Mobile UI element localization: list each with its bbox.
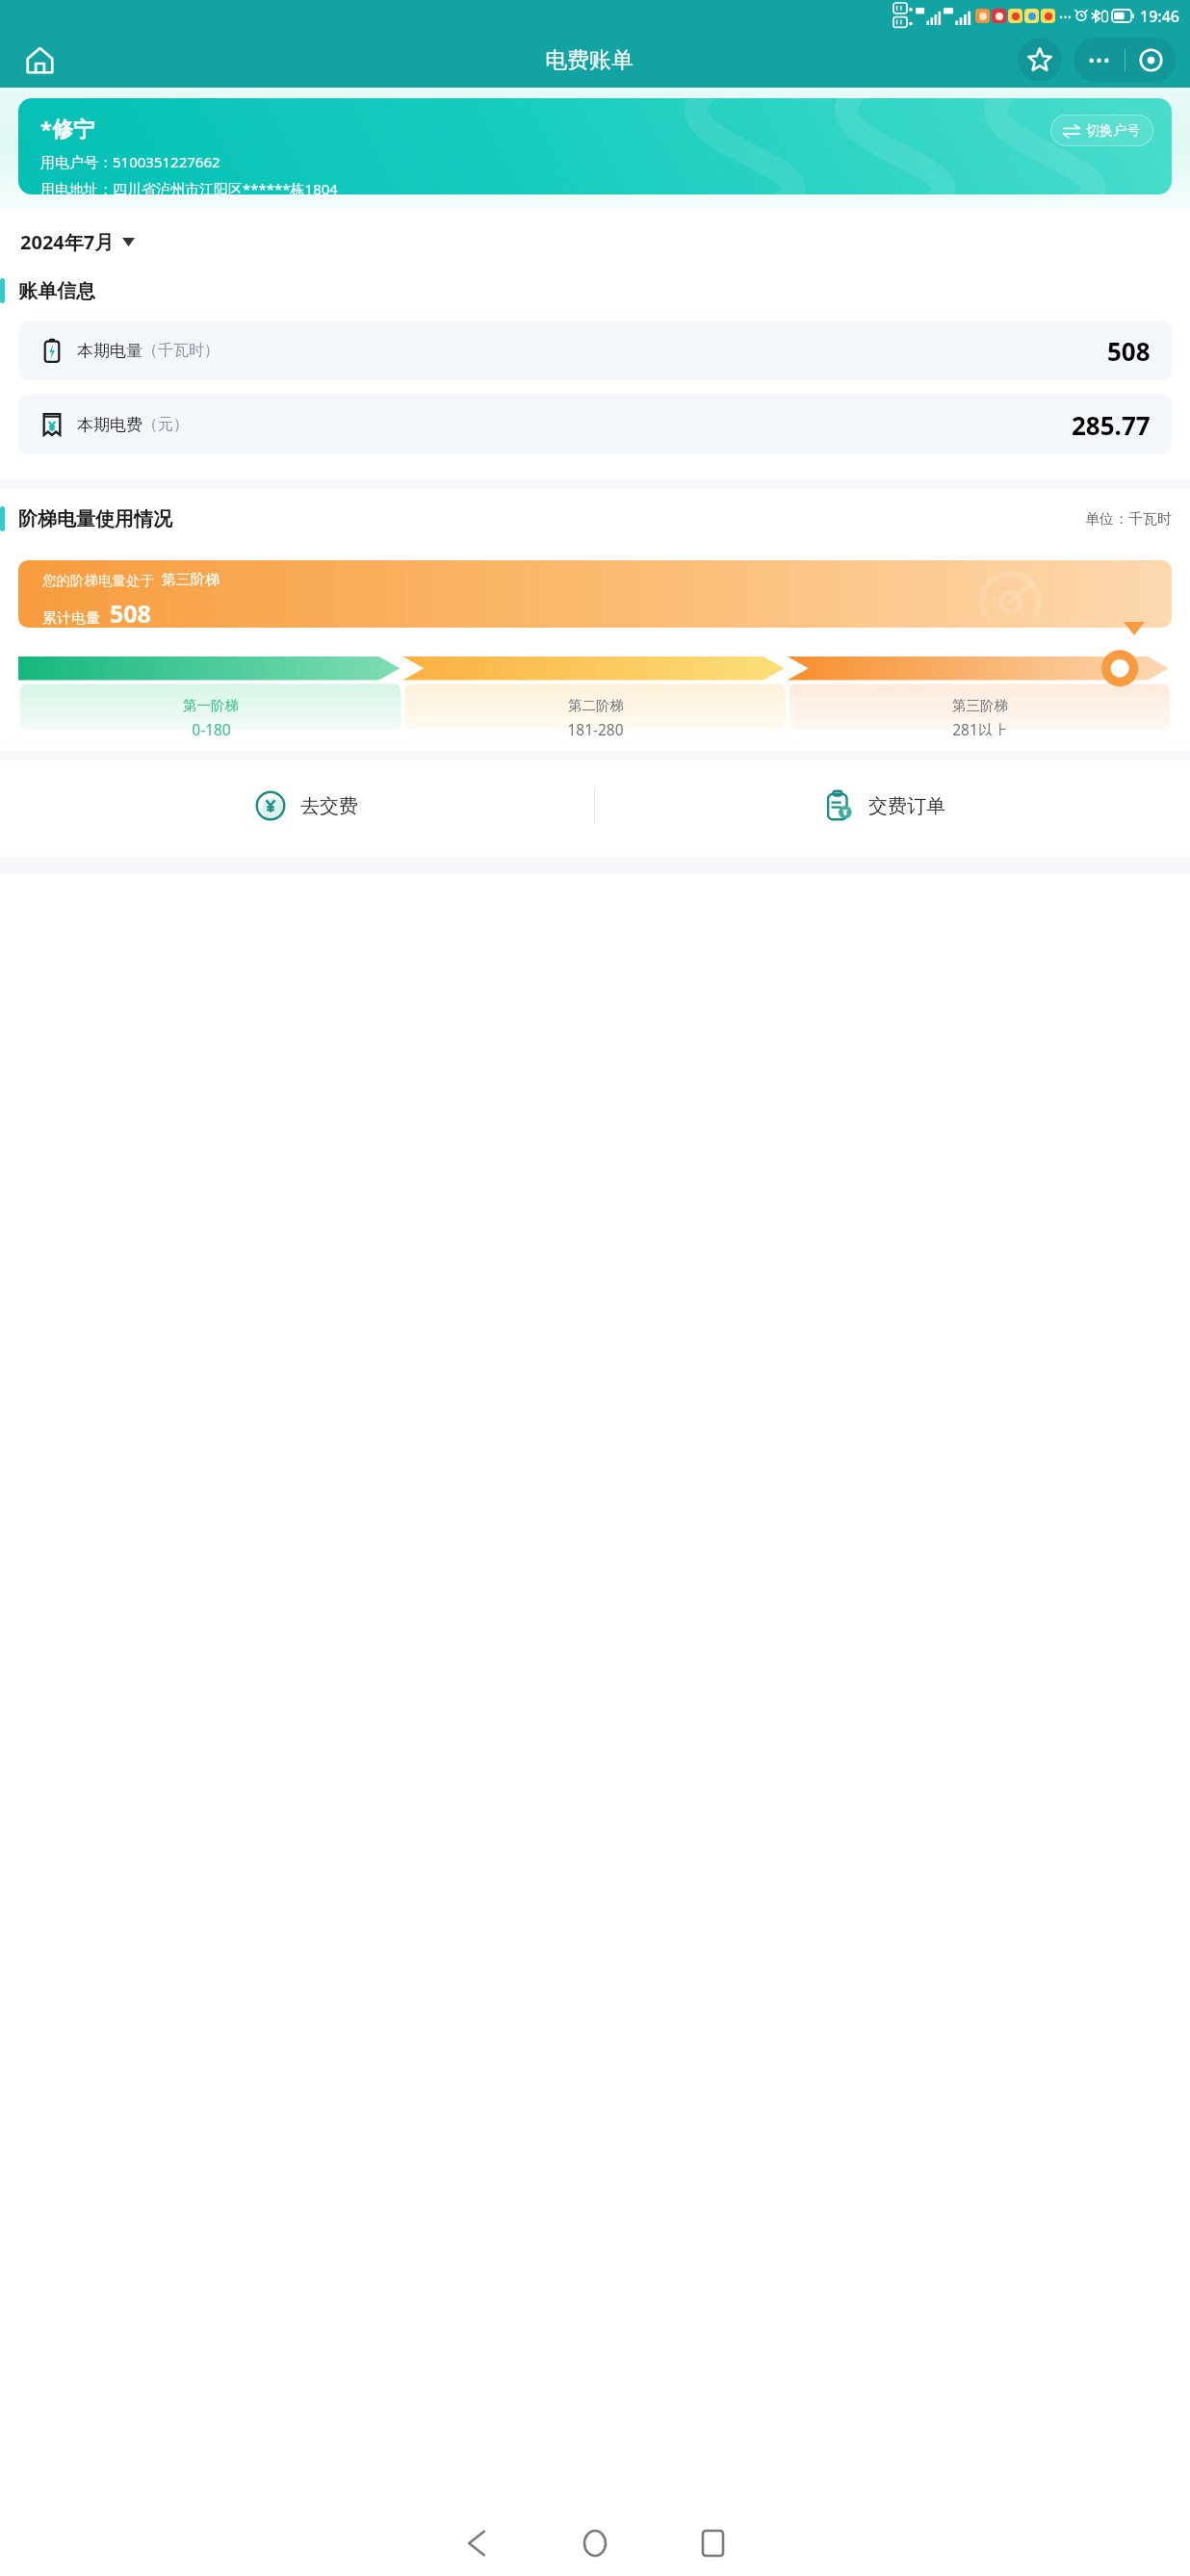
button[interactable]: 第一阶梯 [18, 689, 403, 735]
button[interactable]: Close [1125, 38, 1177, 82]
button[interactable]: 第三阶梯 [788, 689, 1172, 735]
staticText: 508 [1107, 334, 1151, 368]
button[interactable]: 您的阶梯电量处于 [18, 560, 1172, 628]
staticText: 281以上 [952, 719, 1008, 735]
button[interactable]: 交费订单 [595, 768, 1172, 843]
button[interactable]: 去交费 [18, 768, 594, 843]
button[interactable]: Recent apps [677, 2511, 748, 2576]
staticText: 用电户号：5100351227662 [40, 152, 220, 171]
staticText: 您的阶梯电量处于 [42, 572, 154, 589]
button[interactable]: 第二阶梯 [403, 689, 788, 735]
staticText: 181-280 [567, 719, 624, 735]
staticText: 第三阶梯 [952, 697, 1008, 714]
button[interactable]: Back [442, 2511, 513, 2576]
staticText: 508 [110, 597, 151, 628]
staticText: 第二阶梯 [568, 697, 624, 714]
staticText: （千瓦时） [142, 341, 220, 360]
staticText: 单位：千瓦时 [1085, 510, 1172, 528]
staticText: 交费订单 [868, 794, 945, 818]
button[interactable]: Favorite [1018, 38, 1062, 82]
button[interactable]: 切换户号 [1050, 115, 1153, 146]
staticText: 第一阶梯 [183, 697, 239, 714]
staticText: 切换户号 [1086, 122, 1140, 140]
staticText: 累计电量 [42, 609, 100, 628]
staticText: 用电地址：四川省泸州市江阳区******栋1804 [40, 179, 338, 194]
staticText: 本期电量 [77, 341, 142, 361]
button[interactable]: 2024年7月 [18, 225, 137, 259]
staticText: 本期电费 [77, 415, 142, 435]
button[interactable]: 本期电量 [18, 321, 1172, 380]
staticText: 2024年7月 [20, 229, 115, 255]
button[interactable]: More options [1074, 38, 1125, 82]
button[interactable]: Home [559, 2511, 631, 2576]
staticText: 0-180 [192, 719, 231, 735]
staticText: （元） [142, 415, 189, 434]
button[interactable]: *修宁 [18, 98, 1172, 194]
staticText: 19:46 [1140, 6, 1179, 27]
staticText: 电费账单 [545, 46, 634, 74]
button[interactable]: Home [17, 38, 62, 82]
staticText: 账单信息 [18, 279, 95, 303]
staticText: 第三阶梯 [162, 571, 220, 589]
staticText: 去交费 [300, 794, 358, 818]
staticText: 阶梯电量使用情况 [18, 507, 172, 531]
staticText: 285.77 [1072, 408, 1151, 442]
button[interactable]: 本期电费 [18, 395, 1172, 454]
staticText: *修宁 [40, 114, 94, 142]
